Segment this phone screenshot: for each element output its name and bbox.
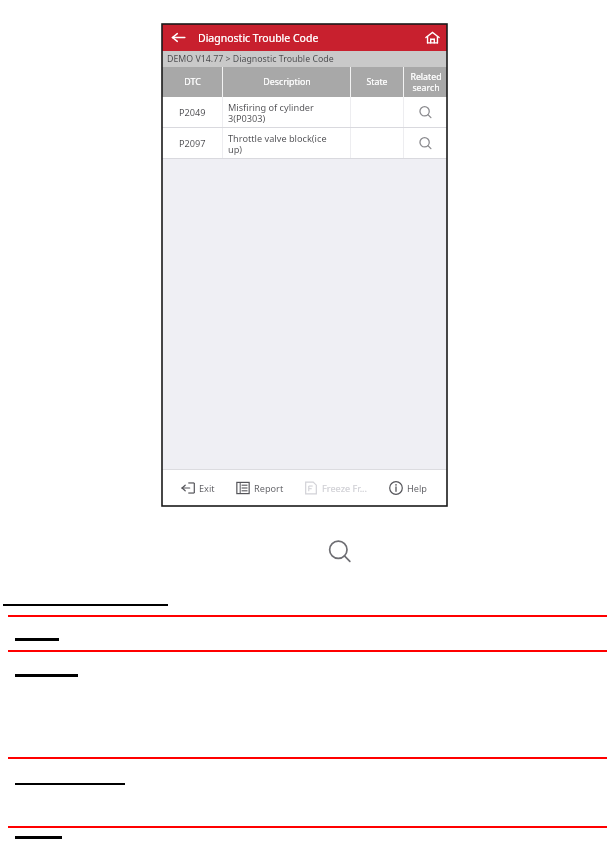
staticText: Diagnostic Trouble Code [198,31,319,45]
staticText: DEMO V14.77 > Diagnostic Trouble Code [167,53,334,65]
button[interactable]: Back [162,24,194,51]
button[interactable]: Related search [404,97,447,127]
staticText: P2097 [179,137,206,150]
staticText: P2049 [179,106,206,119]
button[interactable]: Report [234,481,286,495]
staticText: DTC [184,76,201,88]
staticText: State [366,76,388,88]
button[interactable]: Home [417,24,447,51]
staticText: Misfiring of cylinder 3(P0303) [228,101,314,124]
button[interactable]: Exit [179,481,217,495]
staticText: Freeze Fr... [322,482,368,495]
staticText: Related search [410,71,442,93]
staticText: Help [407,482,428,495]
button[interactable]: Related search [404,128,447,158]
staticText: Report [254,482,284,495]
button[interactable]: Freeze Fr... [302,481,370,495]
button[interactable]: Help [387,481,430,495]
staticText: Throttle valve block(ice up) [228,132,327,155]
staticText: Description [263,76,311,88]
other: Search [326,538,354,566]
staticText: Exit [199,482,215,495]
